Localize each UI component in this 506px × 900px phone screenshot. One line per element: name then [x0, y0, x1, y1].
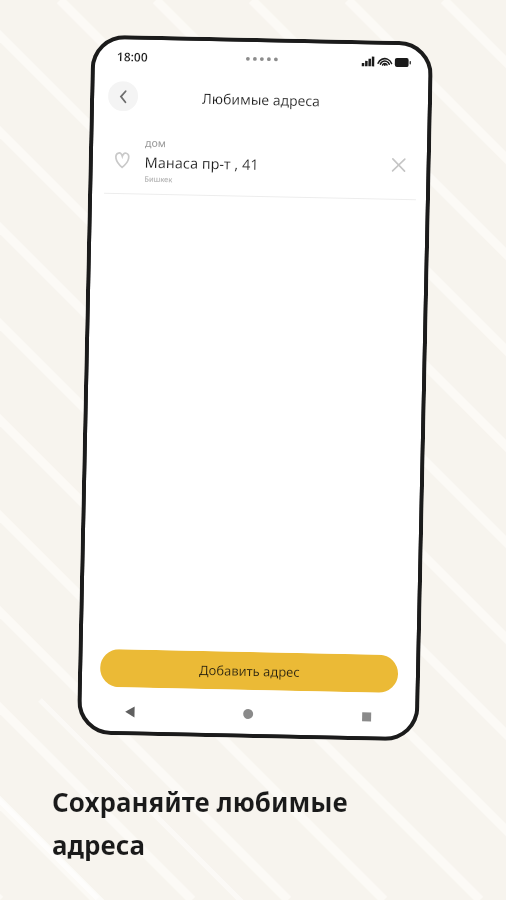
- button[interactable]: дом: [92, 127, 427, 200]
- staticText: Любимые адреса: [202, 89, 320, 110]
- staticText: 18:00: [117, 48, 148, 65]
- staticText: Бишкек: [144, 174, 172, 184]
- staticText: дом: [145, 136, 166, 150]
- staticText: Добавить адрес: [199, 661, 300, 681]
- button[interactable]: Недавние приложения: [353, 703, 379, 730]
- button[interactable]: Главный экран: [235, 701, 261, 727]
- staticText: адреса: [52, 827, 145, 862]
- staticText: Манаса пр-т , 41: [144, 152, 259, 174]
- button[interactable]: Назад: [117, 698, 143, 725]
- button[interactable]: Назад: [108, 81, 138, 111]
- staticText: Сохраняйте любимые: [52, 784, 348, 819]
- button[interactable]: Добавить адрес: [100, 649, 398, 693]
- button[interactable]: Удалить адрес: [384, 151, 413, 179]
